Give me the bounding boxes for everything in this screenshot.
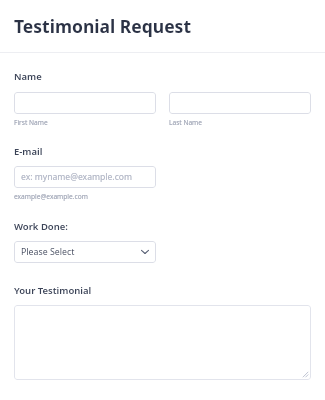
button[interactable]: Your Testimonial: [14, 305, 311, 380]
staticText: E-mail: [14, 145, 43, 158]
staticText: Work Done:: [14, 220, 68, 233]
button[interactable]: Work Done selector: [14, 241, 156, 263]
staticText: Please Select: [21, 246, 75, 258]
staticText: ex: myname@example.com: [21, 171, 133, 183]
staticText: Your Testimonial: [14, 284, 92, 297]
staticText: Last Name: [169, 118, 203, 127]
button[interactable]: E-mail address: [14, 166, 156, 188]
staticText: example@example.com: [14, 192, 88, 201]
staticText: Name: [14, 70, 42, 83]
staticText: First Name: [14, 118, 48, 127]
button[interactable]: First Name: [14, 92, 156, 114]
button[interactable]: Last Name: [169, 92, 311, 114]
staticText: Testimonial Request: [14, 14, 191, 38]
